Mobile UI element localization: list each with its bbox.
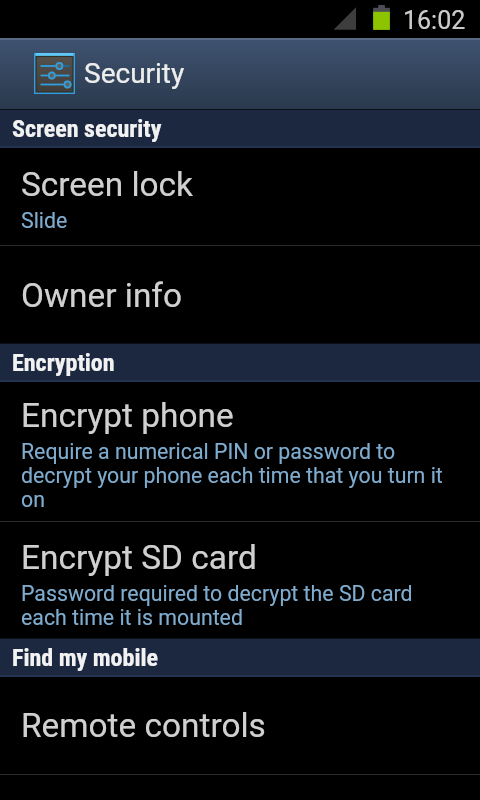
staticText: Screen lock [21, 165, 194, 204]
button[interactable]: Owner info [0, 246, 480, 343]
staticText: Encrypt SD card [21, 538, 257, 577]
button[interactable]: Remote controls [0, 677, 480, 774]
staticText: Encrypt phone [21, 396, 234, 435]
staticText: Find my mobile [12, 644, 159, 672]
staticText: Remote controls [21, 706, 266, 745]
staticText: Slide [21, 208, 68, 233]
button[interactable]: Encrypt SD card [0, 522, 480, 638]
button[interactable]: Encrypt phone [0, 382, 480, 521]
staticText: Password required to decrypt the SD card… [21, 581, 449, 630]
staticText: 16:02 [403, 6, 466, 35]
staticText: Owner info [21, 276, 183, 315]
staticText: Encryption [12, 349, 115, 377]
staticText: Screen security [12, 115, 162, 143]
button[interactable]: Screen lock [0, 148, 480, 245]
staticText: Security [84, 57, 185, 90]
staticText: Require a numerical PIN or password to d… [21, 439, 449, 512]
